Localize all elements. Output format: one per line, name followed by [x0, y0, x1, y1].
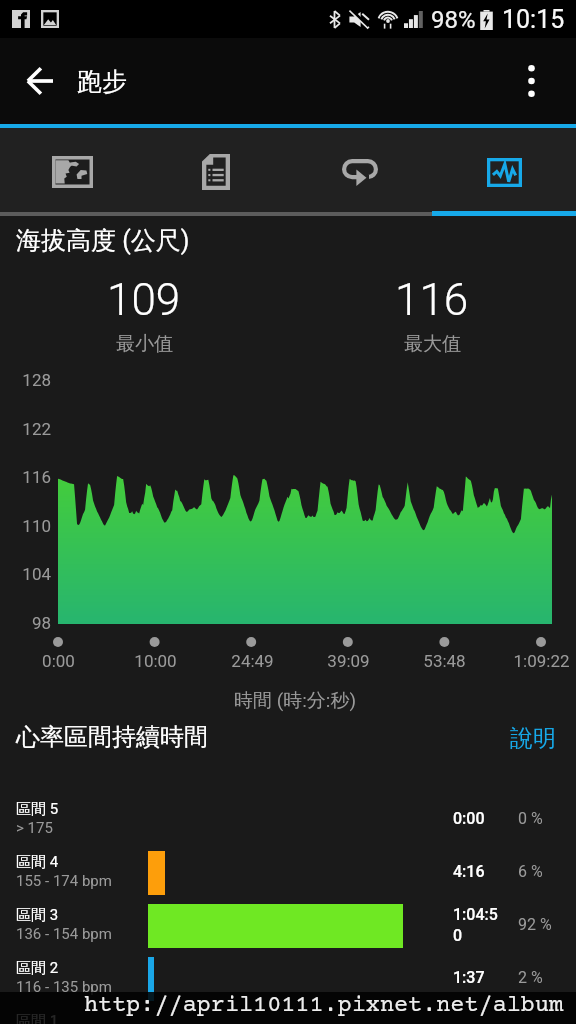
- staticText: 1:09:22: [513, 651, 570, 671]
- staticText: 6 %: [518, 862, 543, 881]
- staticText: 116: [22, 467, 51, 487]
- staticText: 155 - 174 bpm: [16, 872, 112, 890]
- button[interactable]: 區間 2: [0, 951, 576, 1004]
- staticText: 53:48: [423, 651, 466, 671]
- staticText: 區間 2: [16, 959, 59, 978]
- button[interactable]: More options: [504, 54, 558, 108]
- button[interactable]: 區間 5: [0, 792, 576, 845]
- staticText: 10:15: [502, 5, 565, 34]
- staticText: 最大值: [404, 332, 461, 356]
- button[interactable]: 說明: [510, 724, 556, 753]
- staticText: http://april10111.pixnet.net/album: [84, 993, 564, 1019]
- button[interactable]: Details: [144, 128, 288, 216]
- staticText: 時間 (時:分:秒): [234, 689, 357, 713]
- staticText: 110: [22, 516, 51, 536]
- staticText: 區間 4: [16, 853, 59, 872]
- staticText: 122: [22, 419, 51, 439]
- staticText: 136 - 154 bpm: [16, 925, 112, 943]
- staticText: 0:00: [453, 809, 485, 828]
- button[interactable]: 區間 3: [0, 898, 576, 951]
- staticText: 最小值: [116, 332, 173, 356]
- staticText: 128: [22, 370, 51, 390]
- staticText: 海拔高度 (公尺): [16, 225, 190, 256]
- button[interactable]: Charts: [432, 128, 576, 216]
- staticText: 39:09: [327, 651, 370, 671]
- staticText: 116: [395, 274, 469, 326]
- button[interactable]: Map: [0, 128, 144, 216]
- staticText: 0 %: [518, 809, 543, 828]
- staticText: 116 - 135 bpm: [16, 978, 112, 996]
- staticText: > 175: [16, 819, 53, 837]
- staticText: 2 %: [518, 968, 543, 987]
- button[interactable]: 區間 1: [0, 1004, 576, 1024]
- staticText: 92 %: [518, 915, 552, 934]
- staticText: 104: [22, 564, 51, 584]
- staticText: 0:00: [42, 651, 75, 671]
- staticText: 區間 1: [16, 1012, 59, 1024]
- staticText: 1:04:50: [453, 905, 501, 945]
- staticText: 說明: [510, 724, 556, 753]
- staticText: 109: [107, 274, 181, 326]
- staticText: 4:16: [453, 862, 485, 881]
- staticText: 24:49: [231, 651, 274, 671]
- staticText: 98: [31, 613, 51, 633]
- button[interactable]: 區間 4: [0, 845, 576, 898]
- button[interactable]: Back: [12, 54, 66, 108]
- staticText: 10:00: [134, 651, 177, 671]
- staticText: 98%: [431, 6, 476, 34]
- staticText: 心率區間持續時間: [16, 722, 208, 752]
- staticText: 1:37: [453, 968, 485, 987]
- staticText: 跑步: [77, 66, 127, 97]
- button[interactable]: Laps: [288, 128, 432, 216]
- staticText: 區間 5: [16, 800, 59, 819]
- staticText: 區間 3: [16, 906, 59, 925]
